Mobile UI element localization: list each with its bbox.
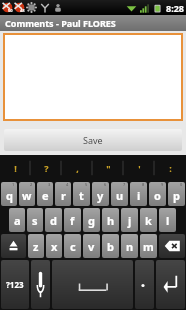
button[interactable]: 0	[168, 182, 185, 206]
staticText: b	[107, 239, 114, 254]
button[interactable]: 1	[1, 182, 17, 206]
button[interactable]: 2	[19, 182, 35, 206]
staticText: 8	[142, 182, 145, 187]
staticText: 7	[123, 182, 126, 187]
staticText: r	[61, 188, 66, 203]
button[interactable]: Shift	[1, 234, 26, 258]
button[interactable]: g	[83, 208, 100, 232]
staticText: f	[70, 213, 75, 228]
staticText: y	[97, 188, 104, 203]
button[interactable]: :	[155, 155, 186, 181]
button[interactable]: !	[0, 155, 31, 181]
staticText: 9	[161, 182, 164, 187]
button[interactable]: ,	[62, 155, 93, 181]
button[interactable]: d	[45, 208, 62, 232]
staticText: d	[50, 213, 57, 228]
staticText: x	[51, 239, 58, 254]
button[interactable]: Comments - Paul FLORES	[0, 15, 186, 31]
staticText: g	[88, 213, 95, 228]
staticText: 8:28	[166, 2, 184, 14]
button[interactable]: Symbols	[1, 260, 29, 309]
button[interactable]: ?	[31, 155, 62, 181]
staticText: u	[116, 188, 124, 203]
staticText: 0	[180, 182, 183, 187]
staticText: Save	[83, 134, 103, 146]
button[interactable]: 7	[111, 182, 128, 206]
staticText: i	[137, 188, 141, 203]
button[interactable]: "	[93, 155, 124, 181]
staticText: 50	[8, 8, 13, 13]
button[interactable]: h	[102, 208, 119, 232]
button[interactable]: m	[140, 234, 157, 258]
button[interactable]: v	[83, 234, 100, 258]
button[interactable]: s	[27, 208, 43, 232]
button[interactable]: Save	[4, 129, 182, 151]
button[interactable]: 5	[73, 182, 90, 206]
staticText: Comments - Paul FLORES	[5, 17, 116, 29]
staticText: ?	[44, 162, 49, 174]
button[interactable]: l	[159, 208, 176, 232]
button[interactable]: a	[9, 208, 25, 232]
staticText: 1	[12, 182, 15, 187]
button[interactable]: c	[64, 234, 81, 258]
staticText: m	[143, 239, 154, 254]
button[interactable]: '	[124, 155, 155, 181]
staticText: 2	[30, 182, 33, 187]
staticText: ?123	[6, 279, 24, 290]
button[interactable]: k	[140, 208, 157, 232]
button[interactable]: Enter	[156, 260, 185, 309]
staticText: p	[173, 188, 180, 203]
staticText: e	[42, 188, 49, 203]
button[interactable]: j	[121, 208, 138, 232]
staticText: l	[166, 213, 170, 228]
staticText: 6	[104, 182, 107, 187]
button[interactable]: Voice input	[31, 260, 50, 309]
button[interactable]: 9	[149, 182, 166, 206]
staticText: 3	[48, 182, 51, 187]
button[interactable]: x	[46, 234, 62, 258]
staticText: !	[14, 162, 17, 174]
button[interactable]: 8	[130, 182, 147, 206]
staticText: ,	[76, 162, 79, 174]
button[interactable]: 4	[55, 182, 71, 206]
button[interactable]: 3	[37, 182, 53, 206]
staticText: o	[154, 188, 161, 203]
staticText: w	[22, 188, 32, 203]
staticText: q	[6, 188, 13, 203]
button[interactable]: z	[28, 234, 44, 258]
staticText: 5	[85, 182, 88, 187]
staticText: k	[145, 213, 152, 228]
staticText: v	[88, 239, 95, 254]
staticText: '	[138, 162, 141, 174]
staticText: s	[32, 213, 38, 228]
button[interactable]: Backspace	[159, 234, 185, 258]
button[interactable]: 6	[92, 182, 109, 206]
staticText: t	[79, 188, 84, 203]
staticText: "	[106, 162, 111, 174]
staticText: z	[33, 239, 39, 254]
staticText: c	[70, 239, 76, 254]
staticText: 48	[20, 8, 25, 13]
button[interactable]: Space	[52, 260, 133, 309]
staticText: 4	[66, 182, 69, 187]
staticText: a	[14, 213, 21, 228]
staticText: h	[107, 213, 115, 228]
button[interactable]: f	[64, 208, 81, 232]
staticText: n	[126, 239, 134, 254]
staticText: j	[128, 213, 132, 228]
staticText: :	[169, 162, 172, 174]
button[interactable]: Period	[135, 260, 154, 309]
button[interactable]: n	[121, 234, 138, 258]
button[interactable]: b	[102, 234, 119, 258]
